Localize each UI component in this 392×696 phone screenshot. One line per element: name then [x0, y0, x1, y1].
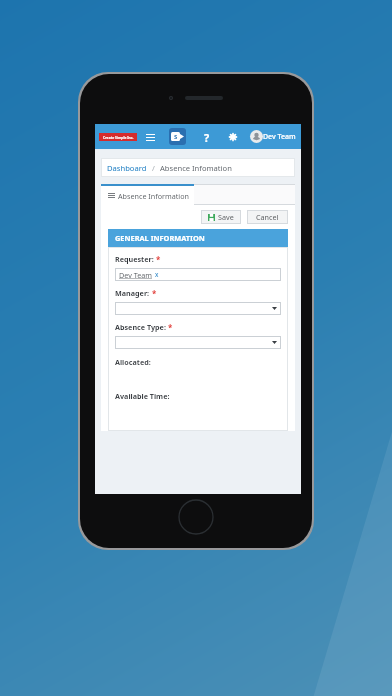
staticText: Create Simple Inc. — [103, 135, 134, 140]
staticText: Dashboard — [107, 163, 147, 173]
staticText: * — [152, 288, 157, 299]
staticText: ? — [204, 130, 210, 143]
button[interactable]: Select — [115, 336, 281, 349]
staticText: * — [156, 254, 161, 265]
other: Settings — [228, 132, 238, 142]
staticText: S — [174, 133, 178, 141]
staticText: Manager: — [115, 288, 150, 298]
button[interactable]: Dashboard — [107, 163, 147, 173]
staticText: Available Time: — [115, 391, 170, 401]
staticText: Dev Team — [119, 270, 152, 280]
button[interactable]: Save — [201, 210, 241, 224]
staticText: Allocated: — [115, 357, 151, 367]
button[interactable]: Cancel — [247, 210, 288, 224]
staticText: Save — [218, 212, 234, 222]
button[interactable]: Menu — [144, 131, 156, 143]
staticText: Cancel — [256, 212, 279, 222]
button[interactable]: Select — [115, 302, 281, 315]
button[interactable]: Dev Team — [250, 130, 296, 143]
staticText: Absence Infomation — [160, 163, 232, 173]
staticText: Dev Team — [263, 132, 296, 142]
staticText: Absence Type: — [115, 322, 166, 332]
staticText: Absence Information — [118, 191, 189, 201]
staticText: * — [168, 322, 173, 333]
button[interactable]: Absence Information — [101, 184, 194, 205]
button[interactable]: Help — [200, 130, 213, 143]
button[interactable]: App logo — [169, 128, 186, 145]
staticText: / — [152, 163, 155, 173]
button[interactable]: Create Simple Inc. — [99, 133, 137, 141]
staticText: GENERAL INFORMATION — [115, 233, 205, 243]
staticText: x — [155, 270, 159, 279]
button[interactable]: Settings — [226, 130, 239, 143]
other: Home — [179, 500, 213, 534]
button[interactable]: Dev Team — [115, 268, 281, 281]
staticText: Requester: — [115, 254, 154, 264]
